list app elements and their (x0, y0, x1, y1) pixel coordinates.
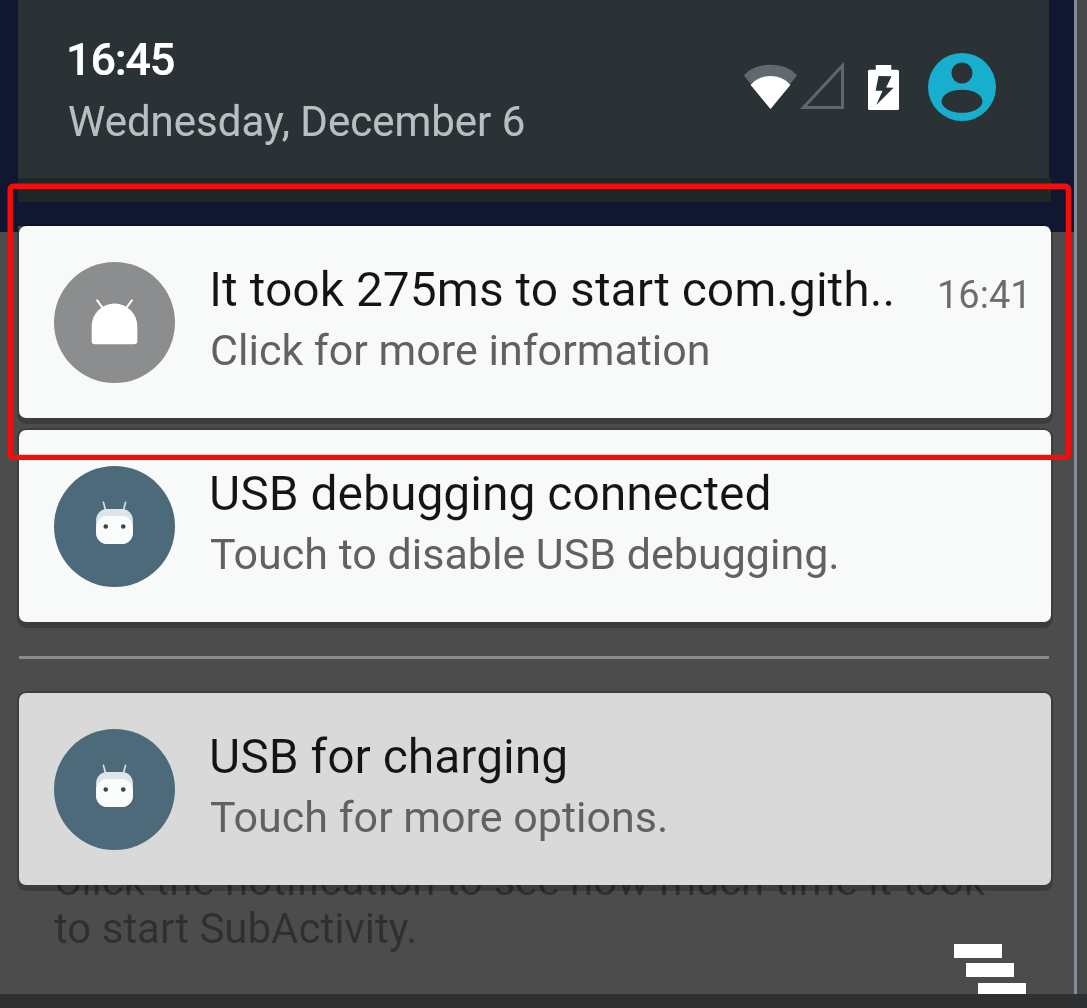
button[interactable]: Account (928, 53, 996, 121)
staticText: 16:41 (937, 273, 1032, 318)
staticText: 16:45 (66, 33, 175, 86)
staticText: Click the notification to see how much t… (54, 856, 986, 905)
button[interactable]: USB debugging connected (19, 430, 1051, 622)
staticText: It took 275ms to start com.gith.. (209, 261, 914, 317)
button[interactable]: USB for charging (19, 693, 1051, 885)
staticText: Touch for more options. (210, 792, 990, 842)
staticText: Click for more information (210, 325, 990, 375)
button[interactable]: It took 275ms to start com.gith.. (19, 226, 1051, 418)
staticText: Touch to disable USB debugging. (210, 529, 990, 579)
staticText: USB for charging (209, 728, 914, 784)
staticText: USB debugging connected (209, 465, 914, 521)
other: Sort (950, 938, 1035, 1008)
staticText: Wednesday, December 6 (68, 97, 526, 146)
staticText: to start SubActivity. (54, 904, 418, 953)
